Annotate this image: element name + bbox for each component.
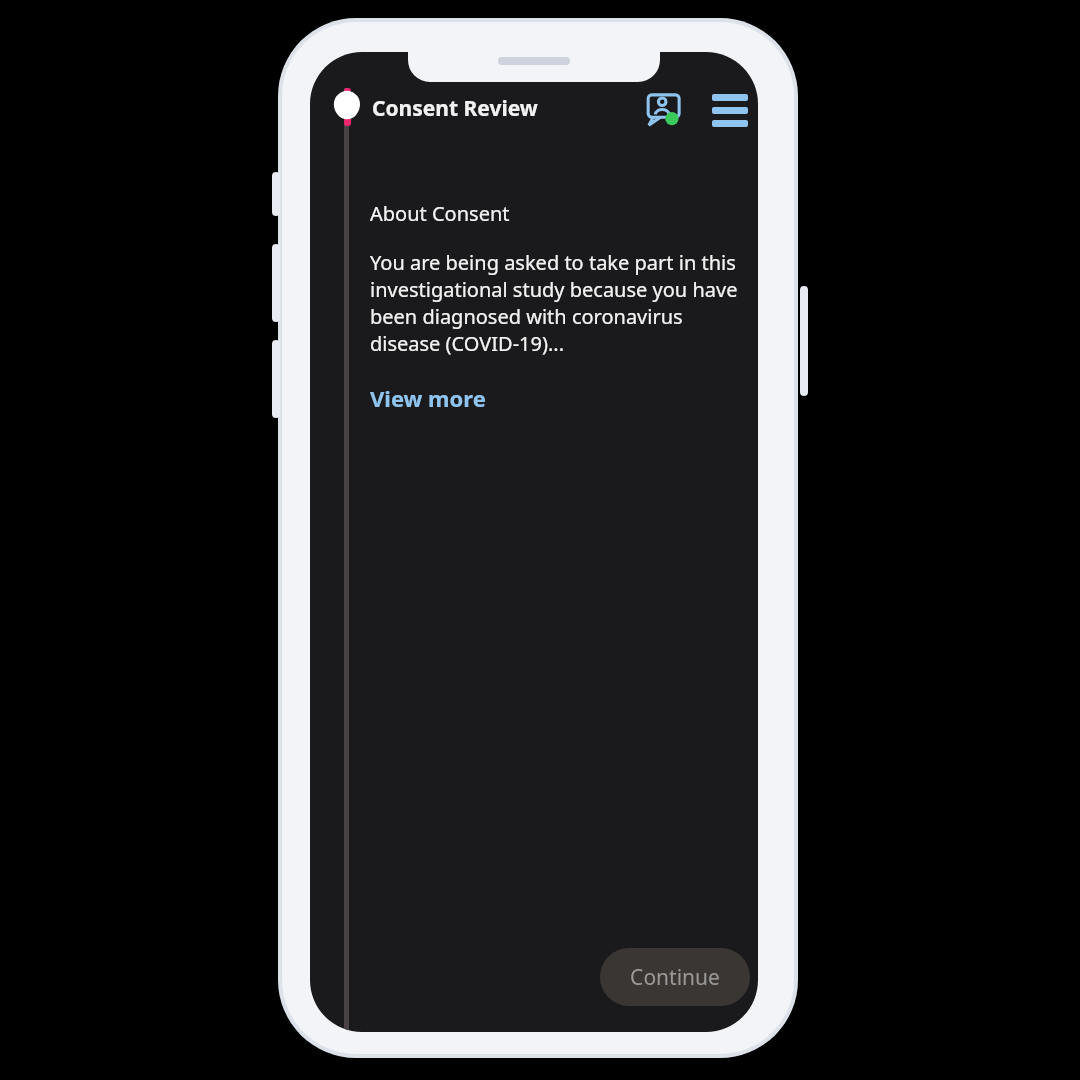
staticText: Consent Review [372,94,538,123]
staticText: Continue [630,963,720,992]
staticText: You are being asked to take part in this… [370,249,742,357]
button[interactable]: View more [370,383,486,413]
button[interactable]: Contact support [642,88,686,132]
staticText: About Consent [370,200,510,227]
button[interactable]: Continue [600,948,750,1006]
button[interactable]: Menu [708,88,752,132]
staticText: View more [370,383,486,413]
